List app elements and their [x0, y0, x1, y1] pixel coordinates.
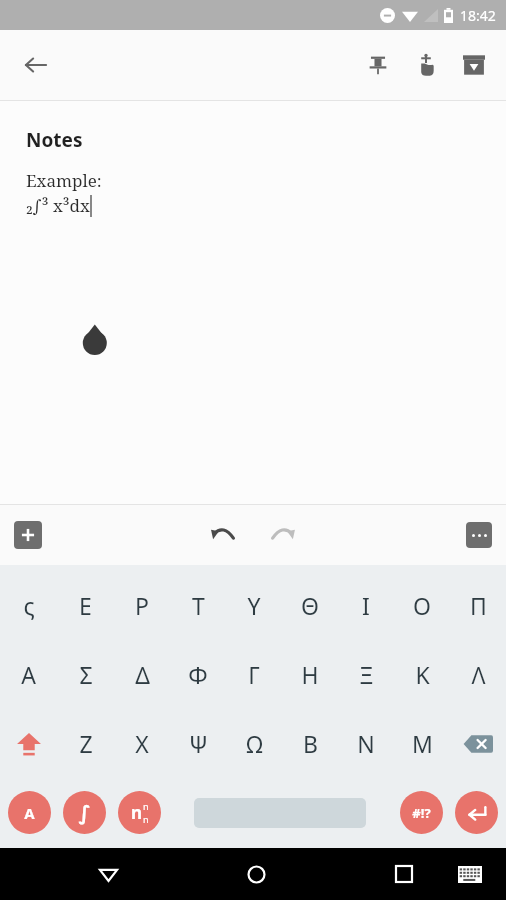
button[interactable]: Α — [8, 791, 51, 834]
staticText: Ι — [362, 590, 370, 621]
staticText: Δ — [135, 659, 150, 690]
staticText: Ψ — [189, 728, 208, 759]
button[interactable]: Π — [450, 571, 506, 640]
button[interactable]: Redo — [260, 512, 306, 558]
button[interactable]: ∫ — [63, 791, 106, 834]
button[interactable]: Τ — [170, 571, 226, 640]
staticText: Ε — [79, 590, 92, 621]
button[interactable]: More options — [466, 522, 492, 548]
button[interactable]: Back — [12, 41, 60, 89]
button[interactable]: Ρ — [114, 571, 170, 640]
button[interactable]: Ζ — [57, 709, 114, 778]
button[interactable]: Σ — [57, 640, 114, 709]
button[interactable]: Ι — [338, 571, 394, 640]
button[interactable]: Pin — [354, 41, 402, 89]
staticText: Α — [21, 659, 36, 690]
button[interactable]: #!? — [400, 791, 443, 834]
button[interactable]: Gesture — [402, 41, 450, 89]
staticText: Π — [470, 590, 487, 621]
staticText: Ο — [413, 590, 431, 621]
button[interactable]: Backspace — [450, 709, 506, 778]
staticText: Ν — [357, 728, 375, 759]
button[interactable]: Κ — [394, 640, 450, 709]
button[interactable]: Home — [234, 852, 278, 896]
staticText: Κ — [415, 659, 430, 690]
button[interactable]: Ψ — [170, 709, 226, 778]
button[interactable]: ς — [0, 571, 57, 640]
staticText: Χ — [135, 728, 149, 759]
staticText: ∫ — [78, 801, 91, 824]
button[interactable]: Back — [86, 852, 130, 896]
button[interactable]: Λ — [450, 640, 506, 709]
staticText: Α — [24, 803, 35, 823]
staticText: Example: — [26, 169, 102, 192]
button[interactable]: Η — [282, 640, 338, 709]
staticText: Ξ — [359, 659, 374, 690]
button[interactable]: Add — [14, 521, 42, 549]
staticText: Σ — [79, 659, 93, 690]
button[interactable]: Μ — [394, 709, 450, 778]
button[interactable]: Switch keyboard — [448, 852, 492, 896]
button[interactable]: Θ — [282, 571, 338, 640]
staticText: n — [131, 801, 143, 824]
button[interactable]: Υ — [226, 571, 282, 640]
staticText: Φ — [188, 659, 208, 690]
button[interactable]: Ξ — [338, 640, 394, 709]
staticText: Η — [301, 659, 319, 690]
staticText: Ρ — [135, 590, 149, 621]
button[interactable]: Ν — [338, 709, 394, 778]
staticText: Θ — [301, 590, 319, 621]
button[interactable]: Β — [282, 709, 338, 778]
staticText: 18:42 — [460, 6, 496, 25]
button[interactable]: Shift — [0, 709, 57, 778]
button[interactable]: Archive — [450, 41, 498, 89]
button[interactable]: Recent apps — [382, 852, 426, 896]
staticText: n — [143, 813, 149, 825]
staticText: Γ — [248, 659, 260, 690]
button[interactable]: Enter — [455, 791, 498, 834]
staticText: Β — [303, 728, 318, 759]
button[interactable]: Ε — [57, 571, 114, 640]
button[interactable]: Ο — [394, 571, 450, 640]
staticText: Τ — [192, 590, 205, 621]
staticText: Ζ — [79, 728, 93, 759]
button[interactable]: Χ — [114, 709, 170, 778]
staticText: Notes — [26, 127, 83, 153]
staticText: #!? — [412, 804, 431, 822]
button[interactable]: Superscript and subscript — [118, 791, 161, 834]
button[interactable]: Δ — [114, 640, 170, 709]
staticText: Μ — [412, 728, 433, 759]
staticText: Υ — [247, 590, 261, 621]
staticText: ς — [23, 590, 35, 621]
button[interactable]: Undo — [200, 512, 246, 558]
staticText: Ω — [246, 728, 263, 759]
button[interactable]: Ω — [226, 709, 282, 778]
button[interactable]: Φ — [170, 640, 226, 709]
button[interactable]: Γ — [226, 640, 282, 709]
staticText: Λ — [471, 659, 486, 690]
staticText: ₂∫³ x³dx — [26, 194, 90, 217]
button[interactable]: Α — [0, 640, 57, 709]
staticText: n — [143, 800, 149, 812]
